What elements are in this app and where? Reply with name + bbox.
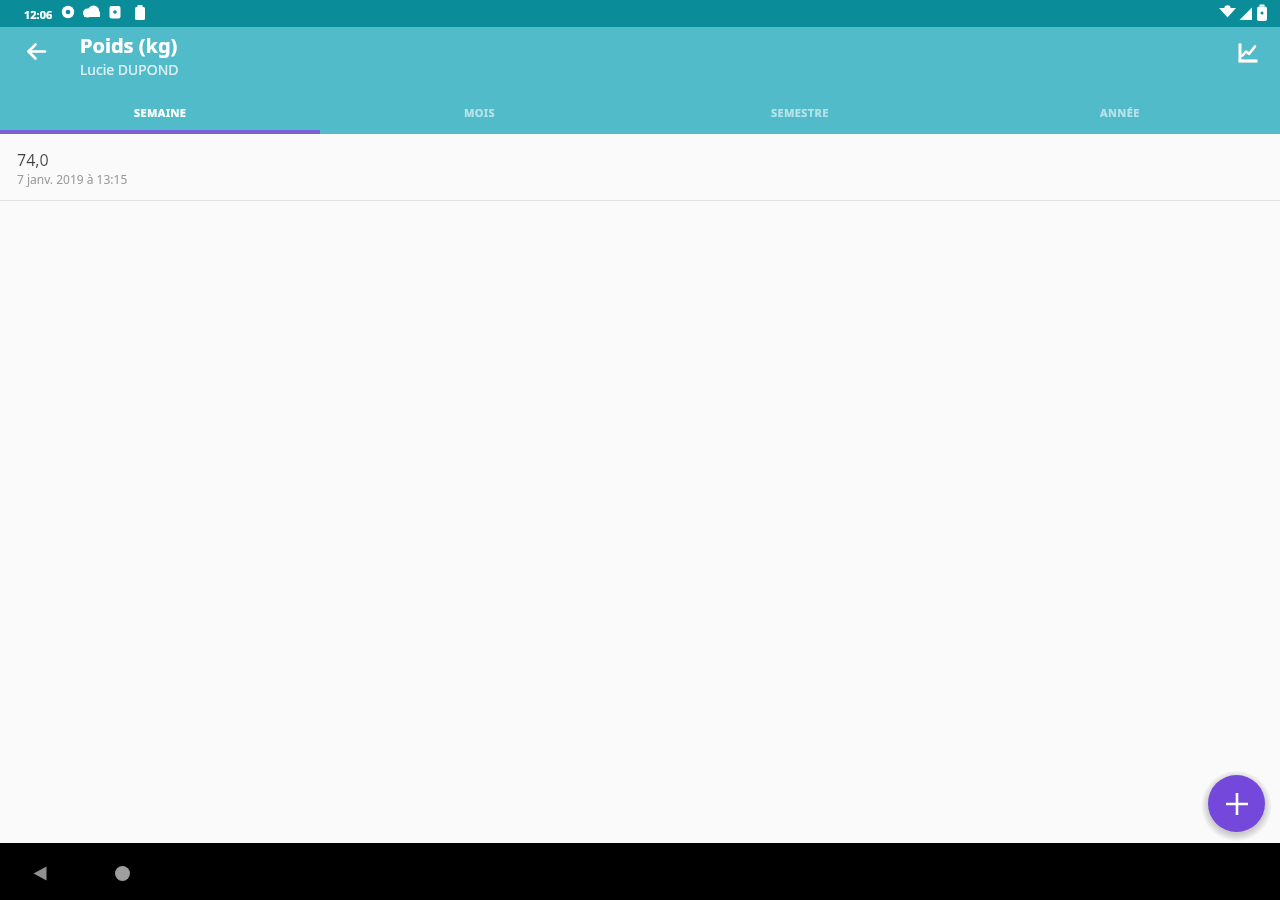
- button[interactable]: MOIS: [320, 90, 640, 134]
- staticText: 12:06: [24, 7, 53, 22]
- staticText: Poids (kg): [80, 32, 178, 59]
- button[interactable]: [1208, 775, 1265, 832]
- staticText: ANNÉE: [1100, 105, 1140, 120]
- button[interactable]: [1224, 29, 1272, 77]
- staticText: SEMESTRE: [771, 105, 829, 120]
- button[interactable]: SEMESTRE: [640, 90, 960, 134]
- staticText: 74,0: [17, 149, 49, 171]
- button[interactable]: SEMAINE: [0, 90, 320, 134]
- button[interactable]: ANNÉE: [960, 90, 1280, 134]
- button[interactable]: [102, 853, 142, 893]
- button[interactable]: [20, 853, 60, 893]
- staticText: MOIS: [464, 105, 496, 120]
- button[interactable]: 74,0: [0, 134, 1280, 200]
- button[interactable]: [16, 31, 56, 71]
- staticText: 7 janv. 2019 à 13:15: [17, 171, 128, 187]
- staticText: SEMAINE: [134, 105, 187, 120]
- staticText: Lucie DUPOND: [80, 60, 179, 79]
